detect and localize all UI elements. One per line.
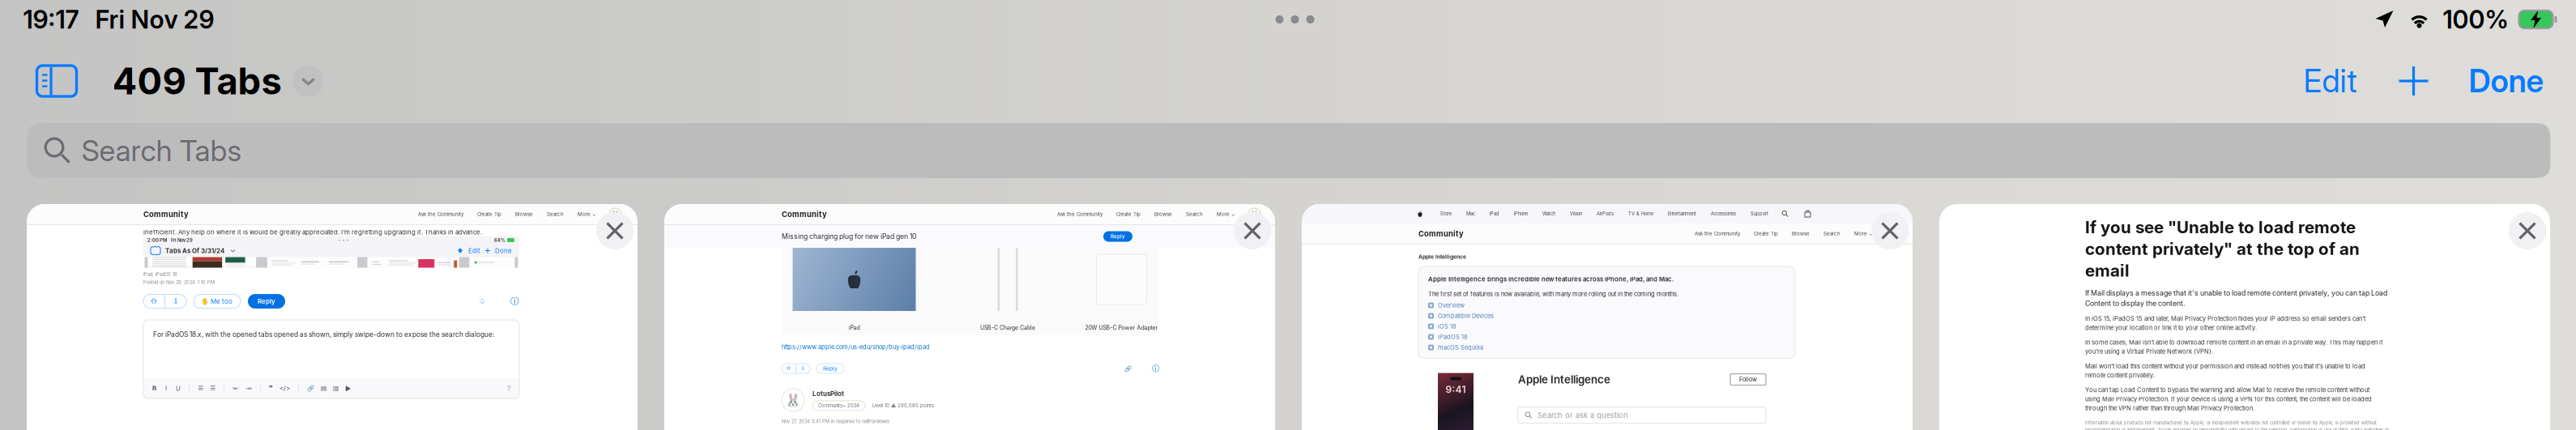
button[interactable]: Close Tab <box>1871 212 1909 249</box>
staticText: using Mail Privacy Protection. If your d… <box>2085 395 2372 403</box>
staticText: macOS Sequoia <box>1438 344 1483 351</box>
staticText: Create Tip <box>1116 211 1141 217</box>
staticText: Follow <box>1739 376 1757 383</box>
staticText: • • • <box>338 238 349 243</box>
staticText: Search Tabs <box>81 133 242 168</box>
button[interactable]: Search Tabs <box>27 123 2550 178</box>
staticText: iPhone <box>1514 211 1528 217</box>
staticText: Search or ask a question <box>1537 411 1628 420</box>
staticText: For iPadOS 18.x, with the opened tabs op… <box>153 330 494 339</box>
staticText: 19:17 <box>23 4 79 34</box>
staticText: ☰ <box>198 385 203 392</box>
button[interactable]: Close Tab <box>1234 212 1271 249</box>
staticText: Entertainment <box>1668 211 1696 217</box>
staticText: recommendation or endorsement. Apple ass… <box>2085 427 2389 430</box>
staticText: U <box>176 384 181 392</box>
button[interactable]: Done <box>2457 57 2555 105</box>
staticText: 🔗 <box>307 385 314 392</box>
staticText: ⬆ <box>457 247 463 255</box>
staticText: More ⌄ <box>1217 211 1235 217</box>
staticText: ⇥ <box>245 384 252 392</box>
staticText: iPad <box>1490 211 1499 217</box>
staticText: Fri Nov 29 <box>171 237 193 243</box>
staticText: Community <box>143 210 189 219</box>
staticText: In some cases, Mail isn't able to downlo… <box>2085 339 2383 346</box>
staticText: ⇧ <box>786 365 791 372</box>
staticText: More ⌄ <box>578 211 596 217</box>
staticText: determine your location or link it to yo… <box>2085 324 2257 331</box>
staticText: Done <box>2469 62 2544 100</box>
staticText: Content to display the content. <box>2085 299 2186 308</box>
staticText: Edit <box>2303 62 2357 100</box>
staticText: ⇩ <box>801 365 806 372</box>
staticText: Ask the Community <box>418 211 463 217</box>
staticText: Ask the Community <box>1695 231 1740 237</box>
staticText: Nov 27, 2024 5:41 PM in response to neil… <box>782 419 889 424</box>
staticText: Level 10 ⚠ 290,080 points <box>872 403 934 408</box>
staticText: iOS 18 <box>1438 323 1456 330</box>
staticText: </> <box>279 384 290 392</box>
staticText: Ask the Community <box>1057 211 1102 217</box>
staticText: Missing charging plug for new iPad gen 1… <box>782 232 916 241</box>
staticText: USB-C Charge Cable <box>980 324 1035 331</box>
staticText: ❞ <box>269 384 273 392</box>
staticText: Community+ 2024 <box>818 403 859 408</box>
staticText: 64% <box>494 237 505 243</box>
staticText: Apple Intelligence brings incredible new… <box>1428 275 1674 283</box>
staticText: LotusPilot <box>812 390 844 398</box>
staticText: Browse <box>1154 211 1172 217</box>
staticText: Create Tip <box>1754 231 1778 237</box>
staticText: Search <box>1823 231 1840 237</box>
staticText: 409 Tabs <box>112 59 281 103</box>
staticText: In iOS 15, iPadOS 15 and later, Mail Pri… <box>2085 315 2365 322</box>
staticText: ♤ <box>479 297 485 306</box>
staticText: 20W USB-C Power Adapter <box>1085 324 1158 331</box>
staticText: ? <box>507 384 510 393</box>
staticText: Compatible Devices <box>1438 312 1494 319</box>
staticText: Edit <box>468 247 480 255</box>
staticText: | <box>297 384 300 392</box>
staticText: ⇩ <box>173 297 179 306</box>
staticText: 100% <box>2443 4 2508 34</box>
button[interactable]: Close Tab <box>2509 212 2546 249</box>
staticText: ⇧ <box>150 297 158 306</box>
staticText: More ⌄ <box>1854 231 1873 237</box>
button[interactable]: Edit <box>2292 57 2368 105</box>
staticText: TV & Home <box>1628 211 1653 217</box>
staticText: Store <box>1440 211 1452 217</box>
staticText: Community <box>1418 229 1464 238</box>
staticText: Fri Nov 29 <box>95 4 214 34</box>
staticText: inefficient. Any help on where it is wou… <box>143 228 482 236</box>
staticText: The first set of features is now availab… <box>1428 290 1678 298</box>
button[interactable]: Show Sidebar <box>32 61 81 101</box>
staticText: ☰ <box>210 385 215 392</box>
staticText: Browse <box>515 211 533 217</box>
staticText: ⇤ <box>232 384 239 392</box>
staticText: | <box>188 384 190 392</box>
staticText: iPadOS 18 <box>1438 333 1468 341</box>
button[interactable]: New Tab <box>2388 57 2440 105</box>
staticText: Tabs As Of 3/31/24 <box>165 247 224 255</box>
button[interactable]: Close Tab <box>596 212 633 249</box>
button[interactable]: 409 Tabs <box>112 59 324 103</box>
staticText: Search <box>547 211 564 217</box>
staticText: If you see "Unable to load remote <box>2085 217 2356 237</box>
staticText: iPad, iPadOS 18 <box>143 272 177 277</box>
staticText: through the VPN rather than through Mail… <box>2085 404 2254 412</box>
staticText: Vision <box>1570 211 1582 217</box>
staticText: content privately" at the top of an <box>2085 239 2360 259</box>
staticText: 2:00 PM <box>147 237 167 243</box>
staticText: ⓘ <box>1152 364 1159 373</box>
staticText: Reply <box>1111 233 1125 239</box>
staticText: ⓘ <box>510 296 519 307</box>
staticText: You can tap Load Content to bypass the w… <box>2085 386 2369 394</box>
staticText: Done <box>495 247 512 255</box>
staticText: Browse <box>1792 231 1810 237</box>
staticText: 🔗 <box>1124 365 1132 372</box>
staticText: Create Tip <box>477 211 501 217</box>
staticText: Mac <box>1466 211 1475 217</box>
staticText: iPad <box>849 324 860 331</box>
staticText: Apple Intelligence <box>1418 253 1466 260</box>
staticText: Mail won't load this content without you… <box>2085 362 2365 370</box>
staticText: I <box>165 384 167 392</box>
